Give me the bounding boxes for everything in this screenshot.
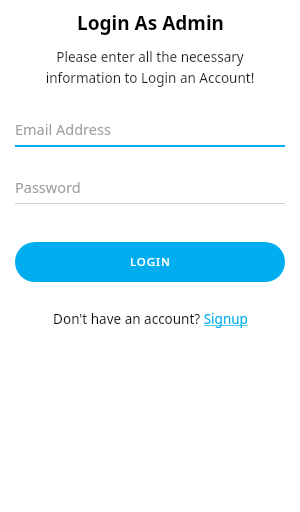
staticText: Email Address — [15, 119, 111, 139]
staticText: Login As Admin — [77, 10, 224, 36]
button[interactable]: LOGIN — [15, 242, 285, 282]
button[interactable]: Email Address — [15, 119, 285, 147]
staticText: LOGIN — [130, 254, 171, 270]
staticText: Please enter all the necessary informati… — [15, 48, 285, 87]
button[interactable]: Password — [15, 177, 285, 204]
button[interactable]: Don't have an account? Signup — [53, 310, 248, 328]
staticText: Password — [15, 177, 81, 197]
staticText: Don't have an account? Signup — [53, 310, 248, 328]
